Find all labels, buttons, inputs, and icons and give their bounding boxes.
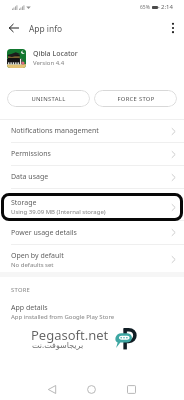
staticText: Qibla Locator [33,49,78,59]
button[interactable]: Home [81,379,102,400]
staticText: 2:14 [161,3,173,11]
button[interactable]: Back [42,379,63,400]
staticText: Version 4.4 [33,59,65,67]
button[interactable]: Storage [0,189,184,220]
staticText: بريجاسوفت.نت [32,339,84,350]
staticText: UNINSTALL [31,95,66,103]
staticText: No defaults set [11,261,54,269]
button[interactable]: Open by default [0,245,184,272]
button[interactable]: Data usage [0,166,184,188]
button[interactable]: Permissions [0,143,184,165]
staticText: Permissions [11,149,51,159]
staticText: Open by default [11,251,64,261]
button[interactable]: Notifications management [0,120,184,142]
staticText: App info [29,23,63,34]
staticText: Using 39.09 MB (Internal storage) [11,208,106,216]
button[interactable]: More options [164,19,182,37]
staticText: Power usage details [11,228,77,238]
staticText: Data usage [11,172,49,182]
staticText: Storage [11,198,37,208]
staticText: App details [11,303,48,313]
staticText: Notifications management [11,126,99,136]
staticText: Pegasoft.net [31,326,109,344]
staticText: FORCE STOP [117,95,155,103]
button[interactable]: UNINSTALL [7,90,90,107]
staticText: App installed from Google Play Store [11,313,115,321]
button[interactable]: Recent apps [121,379,142,400]
button[interactable]: FORCE STOP [94,90,177,107]
button[interactable]: Power usage details [0,221,184,244]
staticText: 65% [140,4,150,11]
staticText: STORE [11,286,31,294]
button[interactable]: Navigate back [5,19,23,37]
